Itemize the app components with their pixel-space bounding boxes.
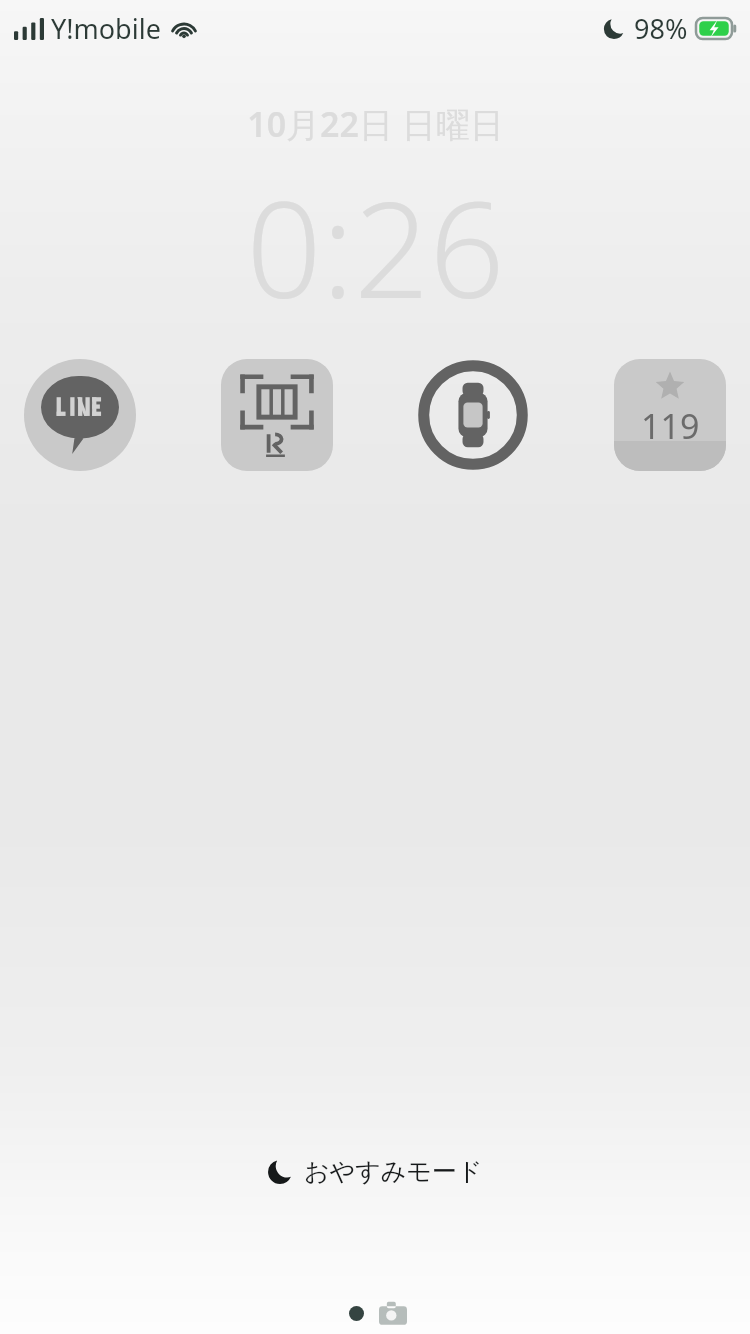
staticText: Y!mobile [51, 10, 161, 47]
staticText: 119 [641, 403, 700, 449]
button[interactable]: Point card [221, 359, 333, 471]
button[interactable]: おやすみモード [257, 1152, 493, 1191]
button[interactable]: Page indicator [344, 1301, 368, 1325]
staticText: 10月22日 日曜日 [247, 101, 504, 147]
button[interactable]: Ping watch [417, 359, 529, 471]
staticText: 0:26 [246, 157, 505, 337]
button[interactable]: 119 emergency [614, 359, 726, 471]
button[interactable]: Camera [378, 1298, 408, 1328]
button[interactable]: LINE [24, 359, 136, 471]
staticText: おやすみモード [304, 1156, 483, 1187]
staticText: 98% [634, 10, 688, 47]
